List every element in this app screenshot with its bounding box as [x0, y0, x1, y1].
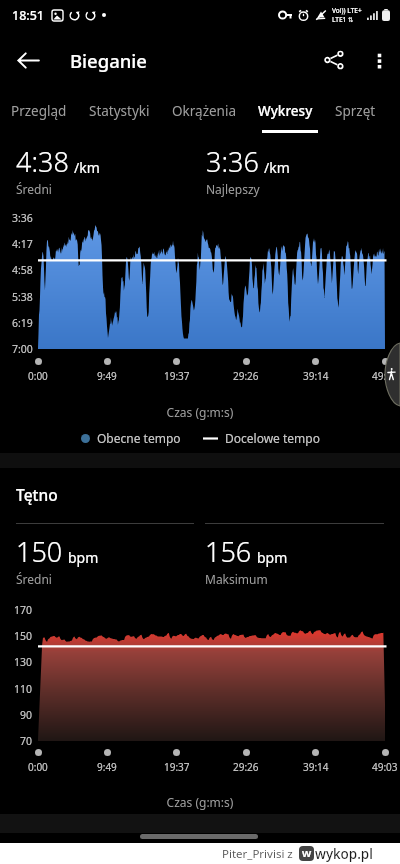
staticText: Średni — [16, 571, 52, 587]
staticText: 4:38 — [16, 143, 69, 180]
staticText: 3:36 — [206, 143, 259, 180]
staticText: 39:14 — [303, 760, 329, 774]
staticText: 19:37 — [164, 369, 190, 383]
staticText: 0:00 — [28, 369, 48, 383]
staticText: bpm — [68, 548, 99, 567]
button[interactable]: Sprzęt — [324, 96, 387, 126]
staticText: Wykresy — [258, 102, 313, 120]
staticText: Średni — [16, 181, 52, 197]
staticText: Tętno — [16, 484, 58, 505]
staticText: LTE1 ⇅ — [332, 15, 354, 24]
button[interactable]: Statystyki — [78, 96, 161, 126]
staticText: 90 — [20, 708, 33, 722]
button[interactable]: Wykresy — [247, 96, 324, 126]
staticText: W — [302, 847, 312, 860]
staticText: 9:49 — [97, 369, 117, 383]
staticText: Czas (g:m:s) — [0, 404, 400, 420]
staticText: 9:49 — [97, 760, 117, 774]
staticText: Maksimum — [205, 571, 268, 587]
staticText: Voi)) LTE+ — [332, 6, 362, 15]
staticText: 49:03 — [372, 369, 398, 383]
staticText: Docelowe tempo — [225, 430, 320, 446]
staticText: Obecne tempo — [97, 430, 181, 446]
button[interactable]: Share — [310, 36, 358, 84]
staticText: wykop.pl — [315, 845, 373, 863]
staticText: /km — [264, 158, 290, 177]
staticText: 130 — [14, 655, 33, 669]
staticText: 29:26 — [233, 369, 259, 383]
button[interactable]: Przegląd — [0, 96, 78, 126]
staticText: 110 — [14, 682, 33, 696]
staticText: Okrążenia — [172, 102, 236, 120]
staticText: 49:03 — [372, 760, 398, 774]
staticText: 150 — [16, 533, 63, 570]
staticText: Czas (g:m:s) — [0, 794, 400, 810]
staticText: bpm — [257, 548, 288, 567]
staticText: 4:17 — [12, 237, 33, 251]
button[interactable]: Okrążenia — [161, 96, 247, 126]
staticText: 3:36 — [12, 211, 33, 225]
staticText: /km — [74, 158, 100, 177]
staticText: 150 — [14, 629, 33, 643]
staticText: Piter_Privisi z — [222, 846, 293, 862]
staticText: Statystyki — [89, 102, 150, 120]
staticText: 5:38 — [12, 290, 33, 304]
staticText: 19:37 — [164, 760, 190, 774]
staticText: 170 — [14, 603, 33, 617]
staticText: Bieganie — [70, 48, 147, 73]
staticText: Przegląd — [11, 102, 67, 120]
staticText: Najlepszy — [206, 181, 260, 197]
staticText: 6:19 — [12, 316, 33, 330]
button[interactable]: More options — [358, 39, 400, 81]
button[interactable]: Running activity marker — [384, 343, 400, 406]
staticText: 156 — [205, 533, 252, 570]
staticText: 39:14 — [303, 369, 329, 383]
staticText: Sprzęt — [335, 102, 376, 120]
staticText: 29:26 — [233, 760, 259, 774]
button[interactable]: Back — [0, 32, 56, 88]
staticText: 0:00 — [28, 760, 48, 774]
staticText: 7:00 — [12, 342, 33, 356]
staticText: 70 — [20, 734, 33, 748]
staticText: 18:51 — [12, 7, 45, 24]
staticText: 4:58 — [12, 263, 33, 277]
